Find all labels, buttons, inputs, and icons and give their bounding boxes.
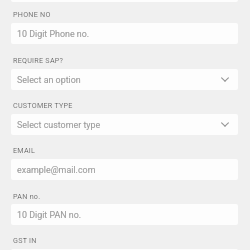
staticText: Select an option <box>17 75 81 85</box>
staticText: PAN no. <box>13 192 41 200</box>
other: Open dropdown <box>221 77 229 82</box>
staticText: 10 Digit PAN no. <box>17 210 82 220</box>
staticText: PHONE NO <box>13 10 51 18</box>
other: Open dropdown <box>221 122 229 127</box>
staticText: 10 Digit Phone no. <box>17 29 90 39</box>
button[interactable]: 10 Digit PAN no. <box>11 204 238 225</box>
staticText: EMAIL <box>13 146 36 154</box>
staticText: CUSTOMER TYPE <box>13 101 73 109</box>
staticText: REQUIRE SAP? <box>13 56 64 64</box>
staticText: GST IN <box>13 236 37 244</box>
button[interactable]: Select an option <box>11 69 238 90</box>
button[interactable]: Select customer type <box>11 114 238 135</box>
staticText: Select customer type <box>17 120 101 130</box>
button[interactable]: 10 Digit Phone no. <box>11 23 238 44</box>
staticText: example@mail.com <box>17 165 96 175</box>
button[interactable]: example@mail.com <box>11 159 238 180</box>
